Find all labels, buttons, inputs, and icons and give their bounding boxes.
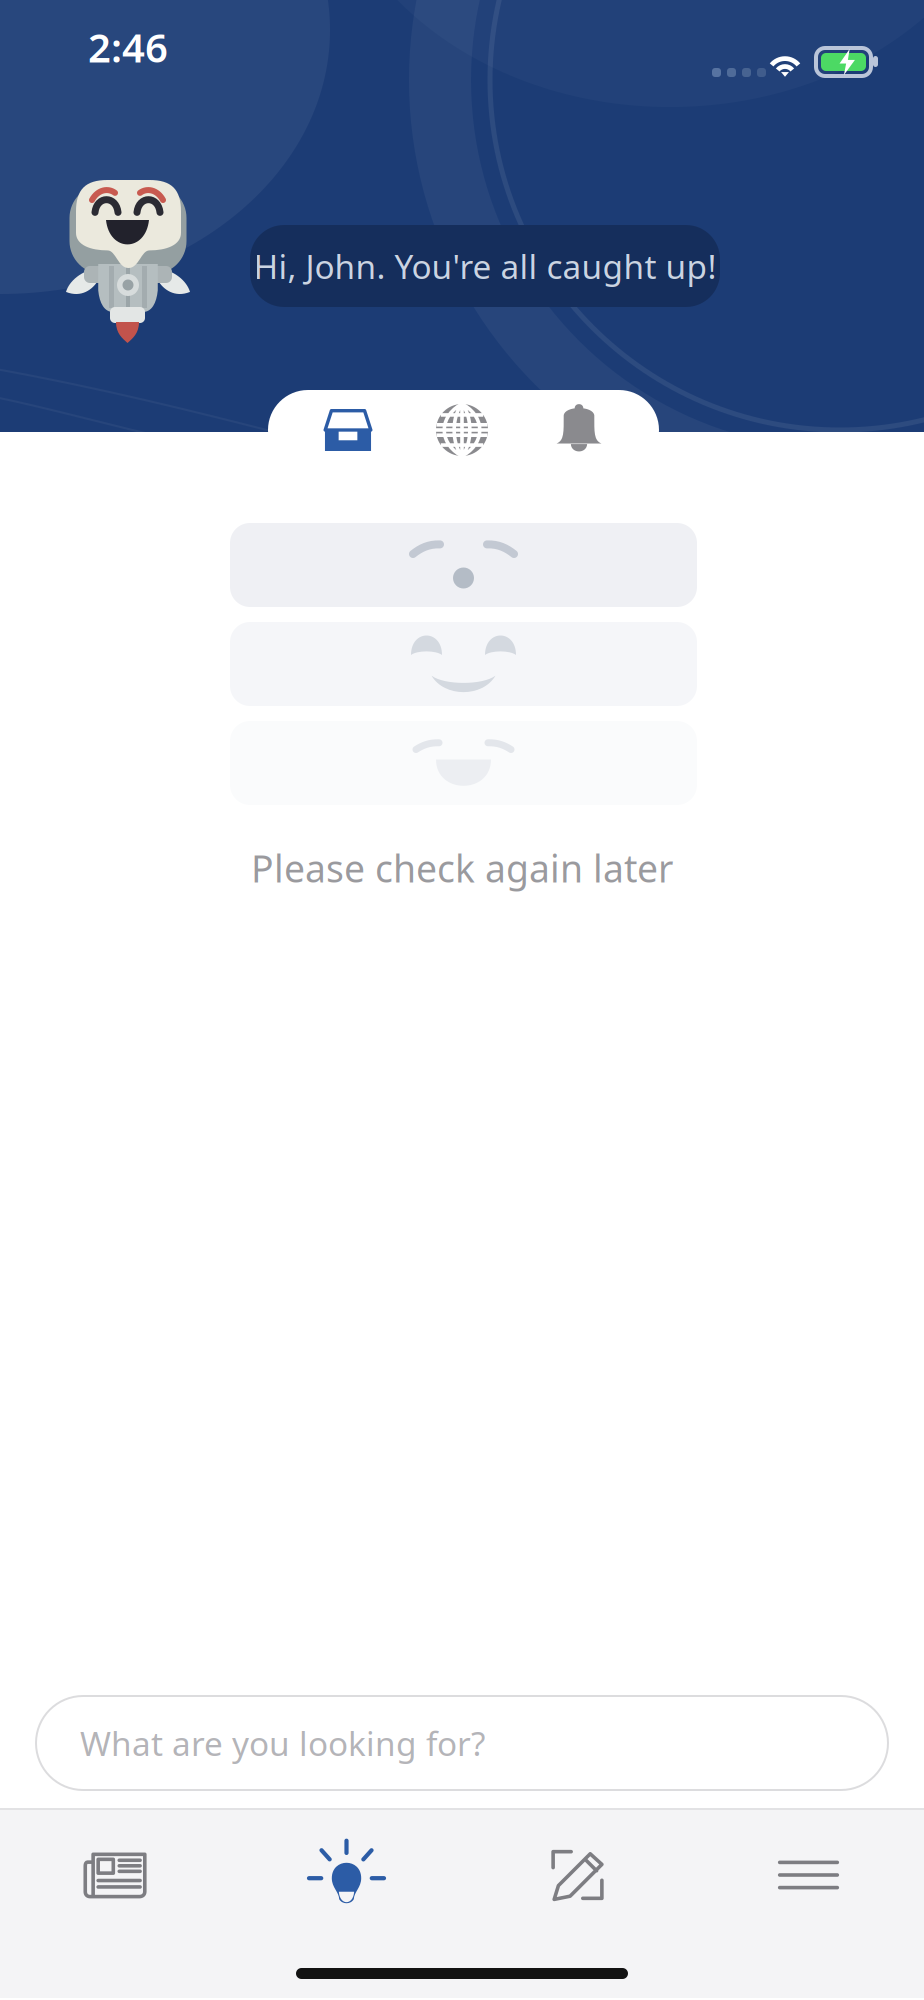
button[interactable]: Ideas (231, 1815, 462, 1935)
button[interactable]: Discover (410, 390, 514, 470)
button[interactable]: What are you looking for? (36, 1696, 888, 1790)
staticText: Hi, John. You're all caught up! (253, 244, 716, 288)
button[interactable]: Menu (693, 1815, 924, 1935)
button[interactable]: Compose (462, 1815, 693, 1935)
staticText: Please check again later (251, 843, 673, 893)
button[interactable]: News (0, 1815, 231, 1935)
staticText: What are you looking for? (80, 1721, 485, 1765)
button[interactable]: Notifications (527, 390, 631, 470)
staticText: 2:46 (88, 20, 168, 73)
button[interactable]: Inbox (296, 390, 400, 470)
